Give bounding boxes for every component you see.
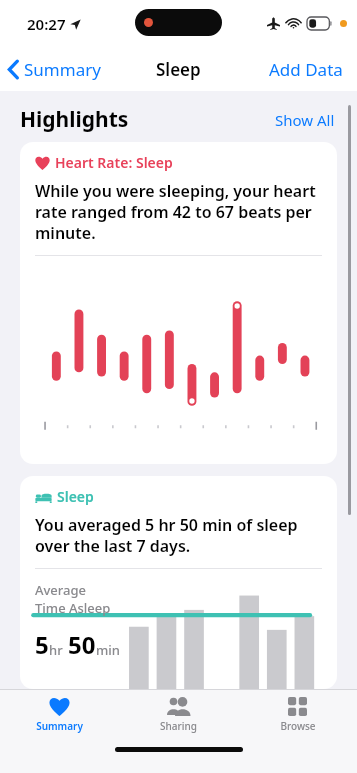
button[interactable]: Heart Rate: Sleep [20,142,337,464]
staticText: Heart Rate: Sleep [55,153,173,172]
staticText: Show All [275,110,335,130]
staticText: min [96,641,120,659]
staticText: Highlights [20,105,129,134]
staticText: Sharing [160,719,197,733]
staticText: Summary [36,719,83,733]
staticText: 5 [35,628,49,661]
button[interactable]: Summary [0,54,109,85]
button[interactable]: Add Data [255,52,357,87]
staticText: You averaged 5 hr 50 min of sleep over t… [35,514,322,557]
button[interactable]: Summary [0,690,119,739]
staticText: Browse [280,719,316,733]
staticText: Summary [24,58,101,81]
button[interactable]: Sleep [20,476,337,689]
staticText: hr [49,641,63,659]
button[interactable]: Show All [271,106,339,134]
button[interactable]: Browse [238,690,357,739]
staticText: Sleep [156,58,201,81]
staticText: Time Asleep [35,599,111,617]
button[interactable]: Sharing [119,690,238,739]
staticText: Average [35,581,87,599]
staticText: While you were sleeping, your heart rate… [35,180,322,244]
staticText: 50 [68,628,96,661]
staticText: Add Data [269,58,343,81]
staticText: 20:27 [27,14,66,34]
staticText: Sleep [57,487,94,506]
